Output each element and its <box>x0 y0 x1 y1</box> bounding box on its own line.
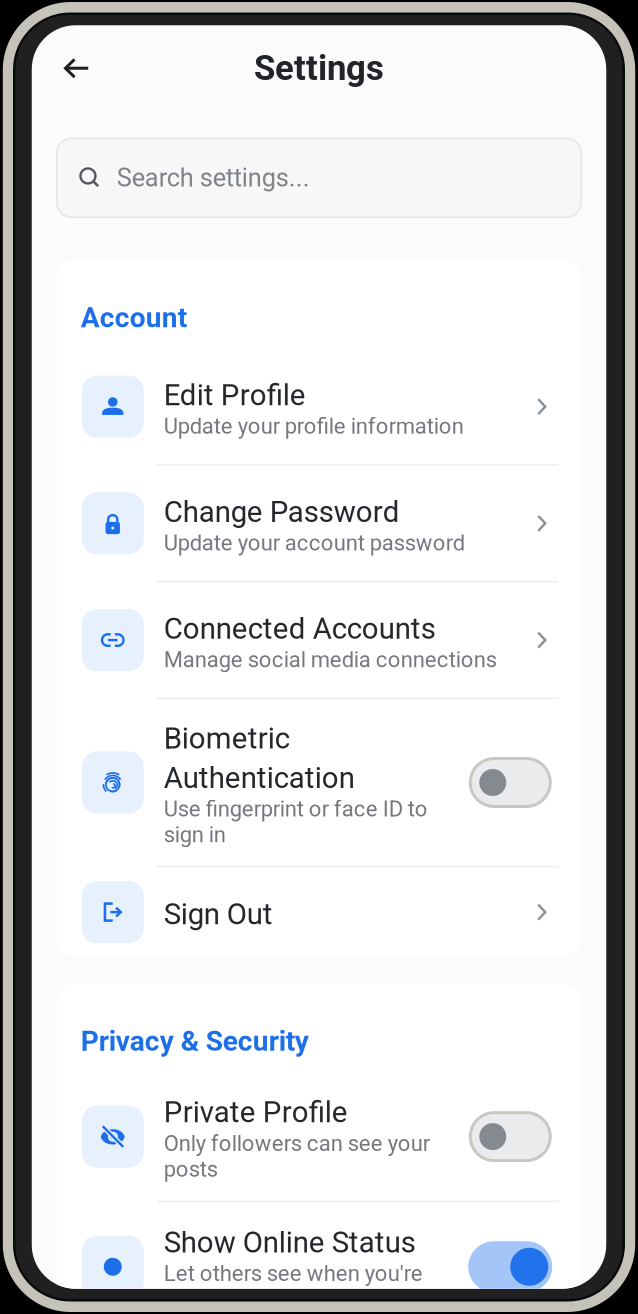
button[interactable]: Biometric Authentication <box>57 699 581 866</box>
button[interactable]: Show Online Status <box>57 1202 581 1314</box>
staticText: Let others see when you're online <box>164 1261 423 1312</box>
staticText: Change Password <box>164 495 400 529</box>
button[interactable]: Change Password <box>57 466 581 581</box>
staticText: Settings <box>254 48 384 88</box>
button[interactable]: Toggle off <box>468 1111 552 1162</box>
staticText: Edit Profile <box>164 378 306 412</box>
button[interactable]: Toggle on <box>468 1241 552 1292</box>
button[interactable]: Edit Profile <box>57 349 581 464</box>
button[interactable]: Sign Out <box>57 867 581 957</box>
staticText: Manage social media connections <box>164 647 497 673</box>
staticText: Account <box>81 301 187 334</box>
staticText: Search settings... <box>117 163 310 193</box>
staticText: Sign Out <box>164 897 273 931</box>
button[interactable]: Toggle off <box>468 757 552 808</box>
staticText: Show Online Status <box>164 1225 416 1260</box>
staticText: Privacy & Security <box>81 1025 309 1058</box>
staticText: Connected Accounts <box>164 611 436 646</box>
staticText: Private Profile <box>164 1095 348 1130</box>
button[interactable]: Private Profile <box>57 1073 581 1201</box>
staticText: Biometric Authentication <box>164 721 355 795</box>
staticText: Use fingerprint or face ID to sign in <box>164 796 428 848</box>
button[interactable]: Back <box>53 45 101 92</box>
staticText: Update your account password <box>164 530 465 556</box>
button[interactable]: Connected Accounts <box>57 582 581 698</box>
staticText: Only followers can see your posts <box>164 1130 430 1182</box>
staticText: Update your profile information <box>164 413 464 439</box>
button[interactable]: Search settings... <box>57 138 581 217</box>
